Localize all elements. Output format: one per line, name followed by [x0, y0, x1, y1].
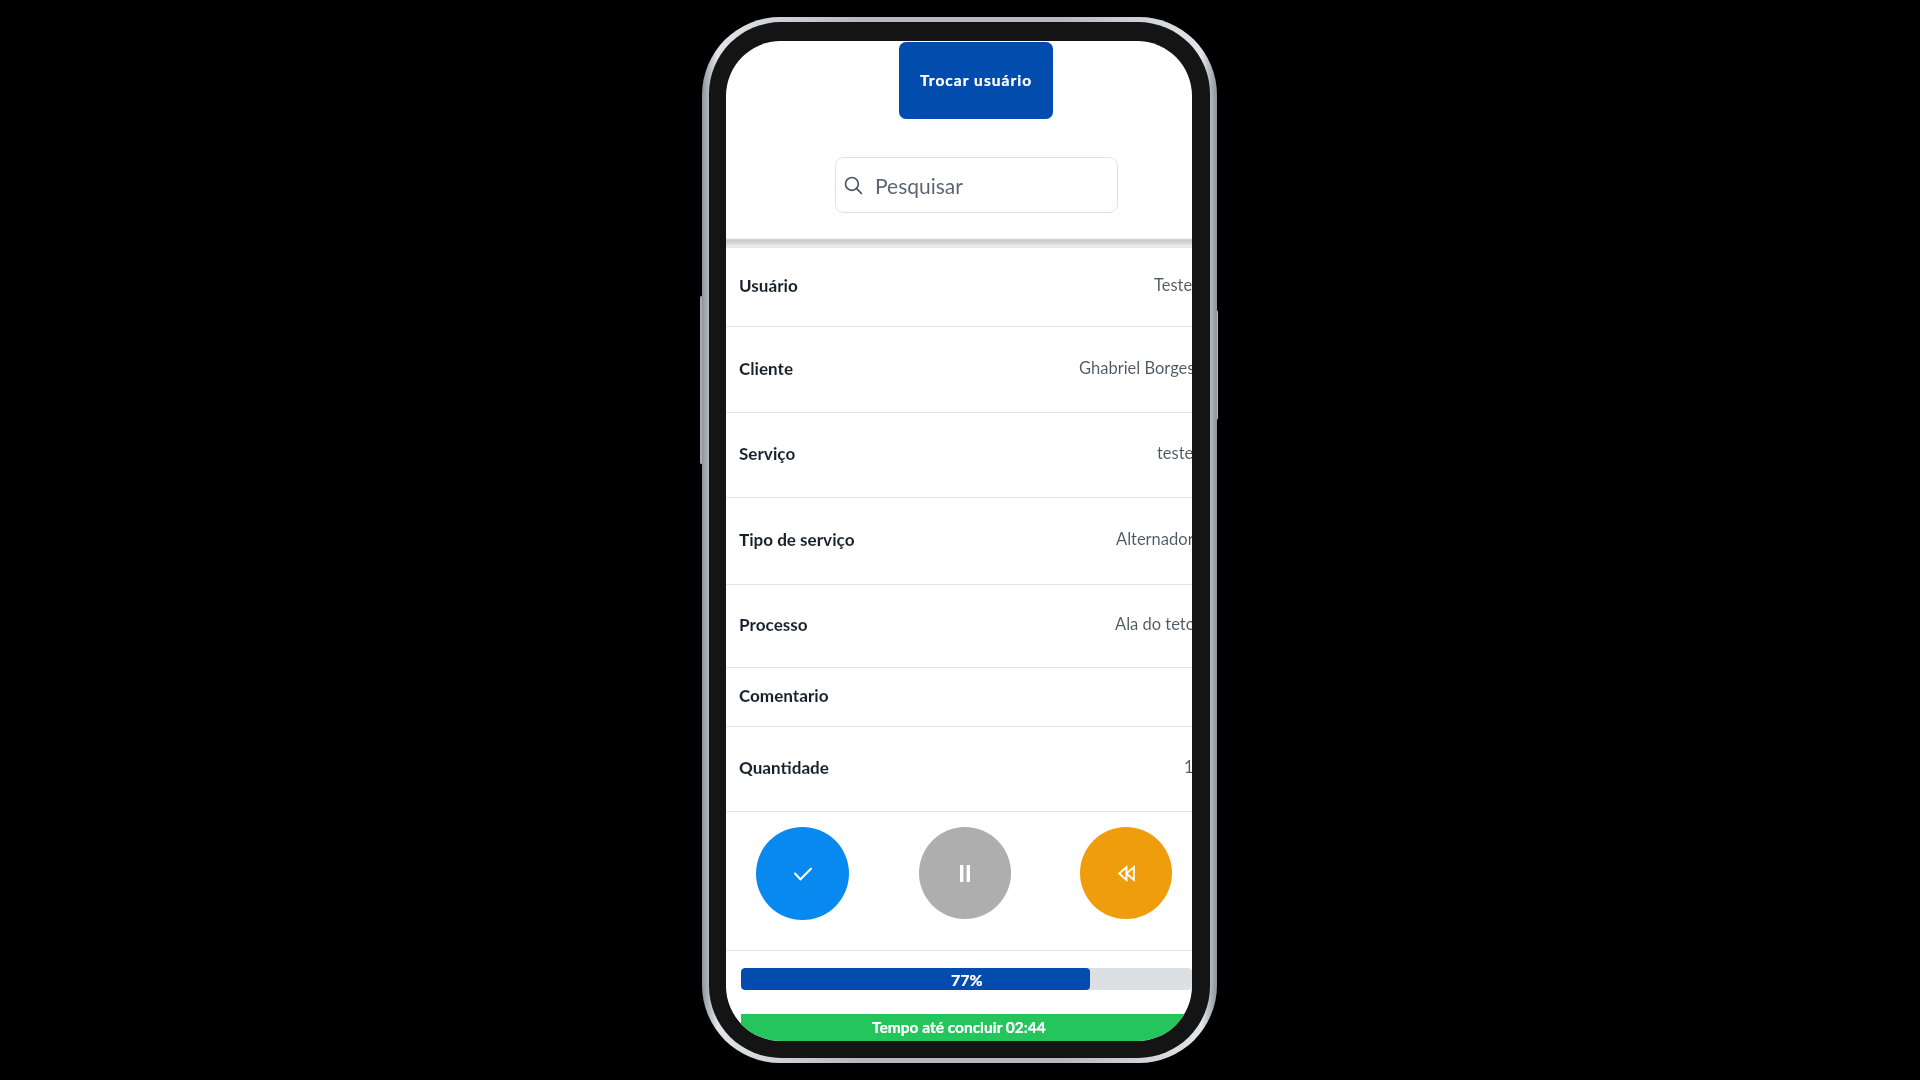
button[interactable]: Tipo de serviço — [726, 498, 1192, 584]
staticText: teste servico — [1157, 443, 1192, 463]
button[interactable]: Serviço — [726, 413, 1192, 497]
staticText: Pesquisar — [875, 173, 963, 198]
button[interactable]: Comentario — [726, 668, 1192, 726]
button[interactable]: Voltar — [1080, 827, 1172, 919]
button[interactable]: Concluir — [756, 827, 849, 920]
staticText: 1 — [1184, 757, 1192, 777]
staticText: Ala do teto leste — [1115, 614, 1192, 634]
button[interactable]: Quantidade — [726, 727, 1192, 811]
button[interactable]: Processo — [726, 585, 1192, 667]
button[interactable]: Pausar — [919, 827, 1011, 919]
staticText: Alternador geral — [1116, 529, 1192, 549]
staticText: Teste do sistema — [1154, 275, 1192, 295]
staticText: Ghabriel Borges Lima — [1079, 358, 1192, 378]
staticText: 77% — [951, 970, 983, 989]
button[interactable]: Cliente — [726, 327, 1192, 412]
staticText: Tempo até concluir 02:44 — [872, 1018, 1046, 1037]
staticText: Serviço — [739, 443, 796, 463]
staticText: Cliente — [739, 358, 794, 378]
staticText: Tipo de serviço — [739, 529, 855, 549]
button[interactable]: Tempo até concluir 02:44 — [741, 1014, 1192, 1041]
button[interactable]: Trocar usuário — [899, 42, 1053, 119]
button[interactable]: Pesquisar — [835, 157, 1118, 213]
staticText: Usuário — [739, 275, 798, 295]
staticText: Quantidade — [739, 757, 829, 777]
staticText: Comentario — [739, 685, 829, 705]
staticText: Trocar usuário — [920, 71, 1033, 90]
staticText: Processo — [739, 614, 808, 634]
button[interactable]: Usuário — [726, 248, 1192, 326]
